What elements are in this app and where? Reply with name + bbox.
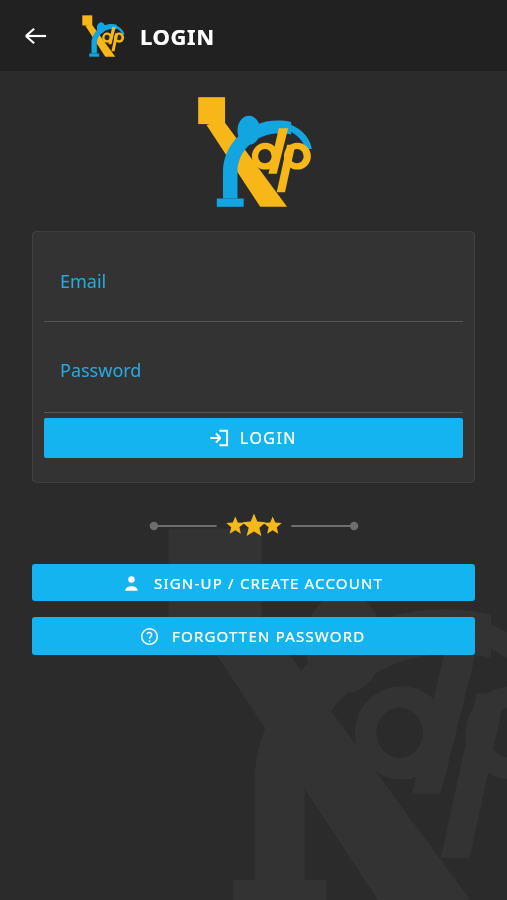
- staticText: LOGIN: [240, 427, 297, 449]
- button[interactable]: LOGIN: [44, 418, 463, 458]
- staticText: Password: [60, 358, 142, 383]
- button[interactable]: Back: [14, 14, 58, 58]
- staticText: FORGOTTEN PASSWORD: [172, 626, 366, 646]
- button[interactable]: Email: [32, 231, 475, 321]
- button[interactable]: SIGN-UP / CREATE ACCOUNT: [32, 564, 475, 601]
- staticText: Email: [60, 269, 107, 294]
- staticText: LOGIN: [140, 21, 215, 51]
- button[interactable]: FORGOTTEN PASSWORD: [32, 617, 475, 655]
- staticText: SIGN-UP / CREATE ACCOUNT: [154, 573, 384, 593]
- button[interactable]: Password: [32, 322, 475, 412]
